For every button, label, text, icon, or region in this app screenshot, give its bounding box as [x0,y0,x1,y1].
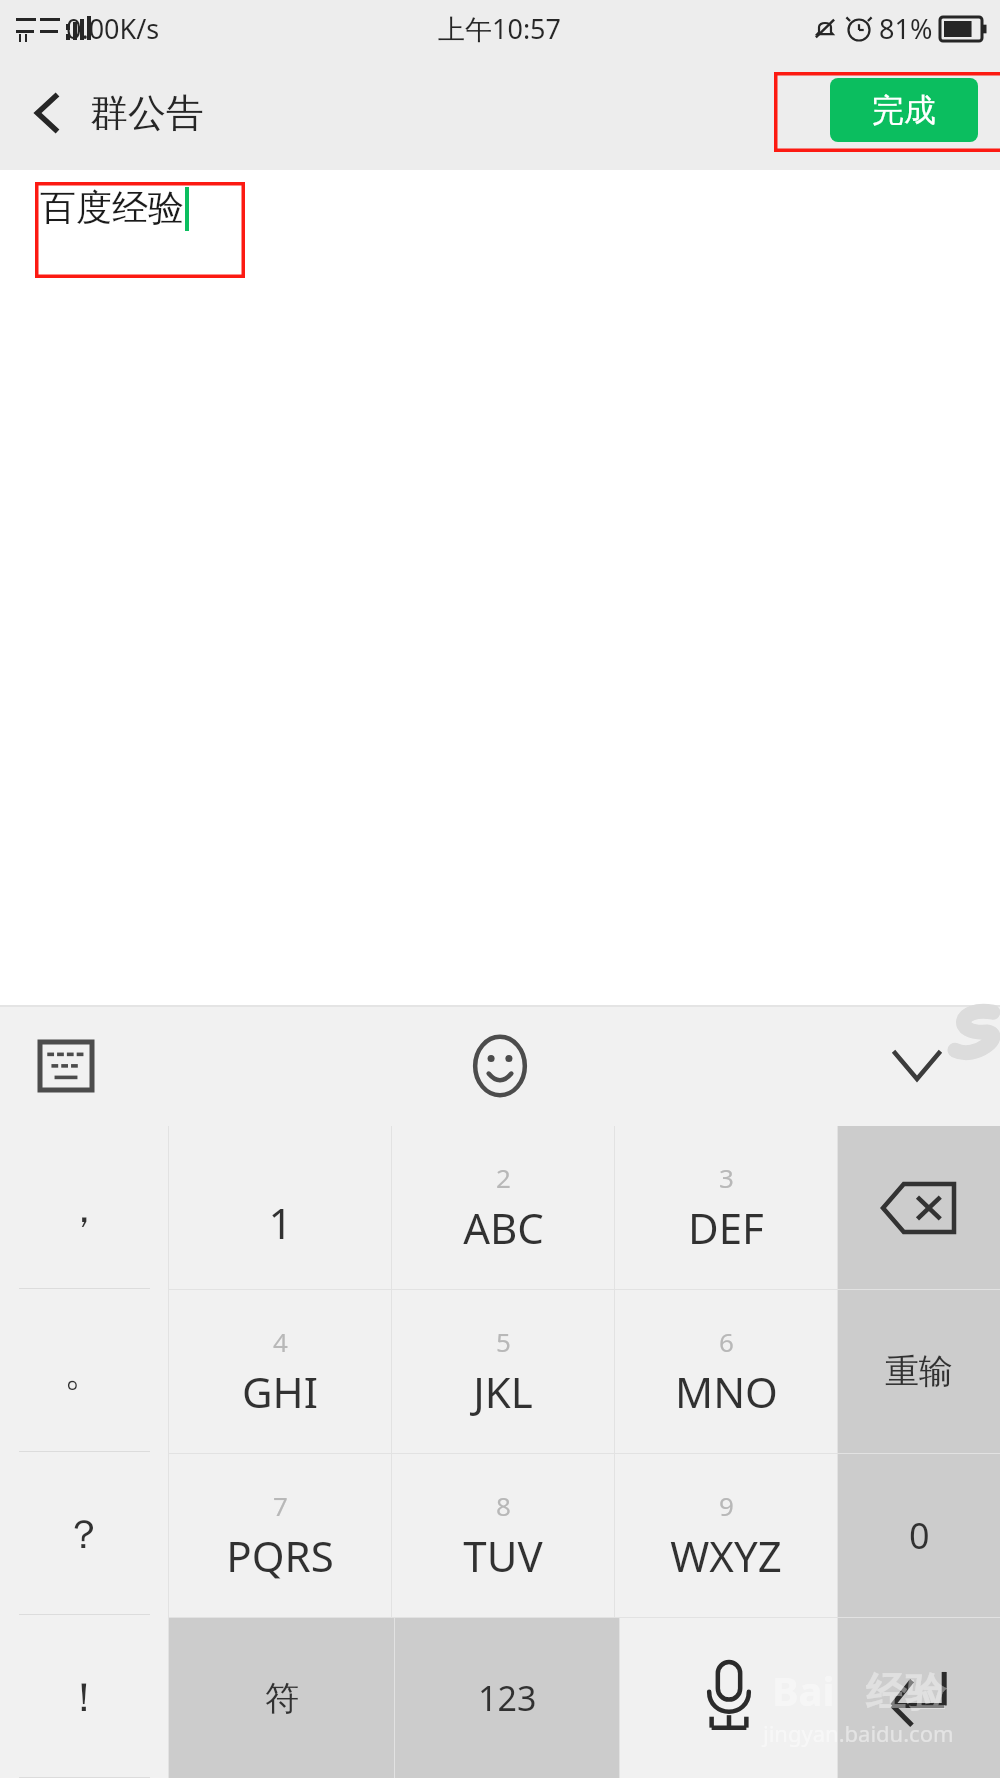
button[interactable]: Voice input [620,1618,837,1778]
staticText: 重输 [885,1350,953,1393]
button[interactable]: 4 [169,1290,391,1453]
staticText: MNO [675,1363,778,1420]
staticText: 2 [496,1160,511,1195]
staticText: 3 [719,1160,734,1195]
button[interactable]: ？ [0,1452,168,1615]
staticText: JKL [473,1363,533,1420]
button[interactable]: 7 [169,1454,391,1617]
staticText: GHI [242,1363,318,1420]
staticText: 百度经验 [40,185,184,230]
staticText: 7 [273,1488,288,1523]
button[interactable]: ！ [0,1615,168,1778]
staticText: 。 [64,1346,104,1396]
staticText: 0 [909,1511,930,1560]
staticText: ， [64,1183,104,1233]
staticText: ABC [463,1199,544,1256]
staticText: ？ [64,1509,104,1559]
staticText: 符 [265,1677,299,1720]
staticText: 8 [496,1488,511,1523]
button[interactable]: Hide keyboard [862,1011,972,1121]
button[interactable]: 百度经验 [35,182,245,278]
button[interactable]: ， [0,1126,168,1289]
button[interactable]: Keyboard layout [16,1011,116,1121]
button[interactable]: 完成 [830,78,978,142]
staticText: 群公告 [90,89,204,137]
button[interactable]: 9 [615,1454,837,1617]
button[interactable]: 1 [169,1126,391,1289]
button[interactable]: Enter [838,1618,1000,1778]
staticText: TUV [463,1527,543,1584]
button[interactable]: 5 [392,1290,614,1453]
staticText: ！ [64,1672,104,1722]
button[interactable]: 6 [615,1290,837,1453]
staticText: 完成 [872,90,936,130]
button[interactable]: Emoji [445,1011,555,1121]
staticText: 1 [268,1194,293,1251]
button[interactable]: 符 [169,1618,394,1778]
button[interactable]: 重输 [838,1290,1000,1453]
staticText: PQRS [226,1527,334,1584]
staticText: 123 [478,1675,537,1721]
button[interactable]: 2 [392,1126,614,1289]
button[interactable]: 。 [0,1289,168,1452]
staticText: 5 [496,1324,511,1359]
staticText: jingyan.baidu.com [763,1718,954,1748]
staticText: DEF [688,1199,764,1256]
staticText: 81% [879,10,933,47]
staticText: 9 [719,1488,734,1523]
staticText: 0.00K/s [66,10,160,47]
staticText: Bai 经验 [772,1663,946,1718]
button[interactable]: 3 [615,1126,837,1289]
button[interactable]: Backspace [838,1126,1000,1289]
button[interactable]: 123 [395,1618,619,1778]
button[interactable]: 8 [392,1454,614,1617]
staticText: 6 [719,1324,734,1359]
staticText: WXYZ [670,1527,782,1584]
staticText: 4 [273,1324,288,1359]
staticText: 上午10:57 [438,10,562,47]
button[interactable]: Back [0,56,224,170]
button[interactable]: 0 [838,1454,1000,1617]
